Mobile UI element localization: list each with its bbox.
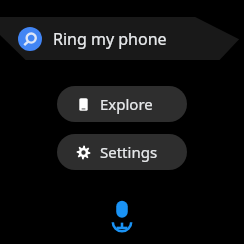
staticText: Explore — [100, 94, 153, 114]
button[interactable]: Voice input — [105, 198, 139, 232]
staticText: Settings — [100, 142, 158, 162]
button[interactable]: Explore — [57, 86, 187, 122]
button[interactable]: Settings — [57, 134, 187, 170]
staticText: Ring my phone — [53, 28, 167, 50]
button[interactable]: Ring my phone — [0, 17, 244, 60]
